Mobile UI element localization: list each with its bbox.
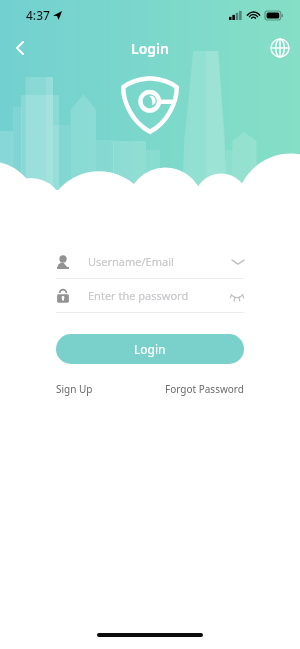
staticText: Login — [131, 39, 169, 58]
staticText: Sign Up — [56, 382, 93, 396]
button[interactable]: Enter the password — [56, 279, 244, 312]
staticText: Forgot Password — [165, 382, 244, 396]
button[interactable]: Language — [265, 33, 295, 63]
button[interactable]: Login — [56, 334, 244, 364]
button[interactable]: Sign Up — [56, 382, 93, 396]
staticText: Enter the password — [88, 288, 189, 303]
button[interactable]: Username/Email — [56, 245, 244, 278]
button[interactable]: Back — [4, 32, 36, 64]
staticText: 4:37 — [26, 7, 50, 23]
staticText: Login — [134, 341, 166, 357]
staticText: Username/Email — [88, 254, 174, 269]
button[interactable]: Forgot Password — [165, 382, 244, 396]
